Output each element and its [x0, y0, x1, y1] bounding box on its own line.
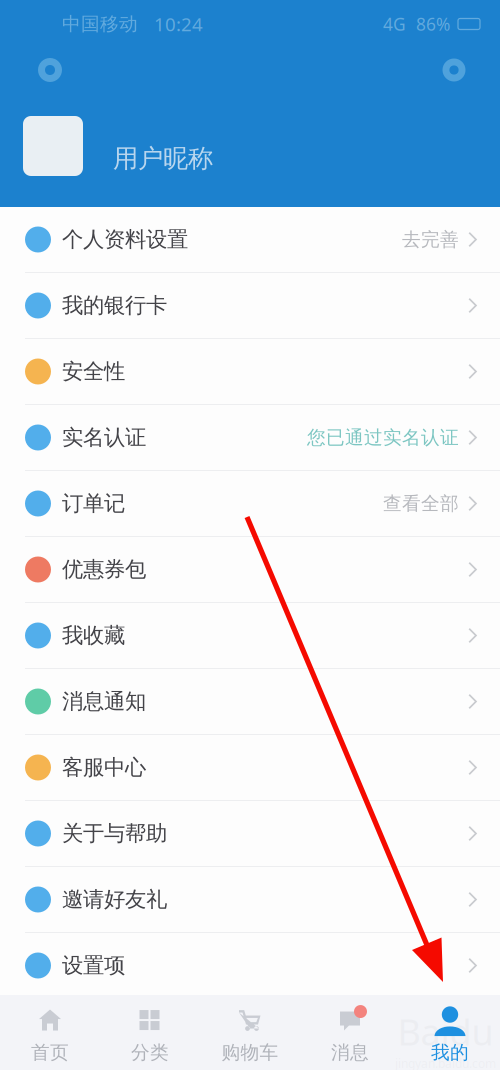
staticText: 您已通过实名认证	[307, 426, 459, 449]
staticText: 个人资料设置	[62, 226, 188, 253]
button[interactable]: 邀请好友礼	[0, 867, 500, 932]
staticText: 10:24	[154, 12, 203, 36]
button[interactable]: 个人资料设置	[0, 207, 500, 272]
staticText: 我收藏	[62, 622, 125, 649]
button[interactable]: 头像	[23, 116, 83, 176]
staticText: 关于与帮助	[62, 820, 167, 847]
button[interactable]: 安全性	[0, 339, 500, 404]
button[interactable]: 设置项	[0, 933, 500, 998]
button[interactable]: 分类	[100, 995, 200, 1070]
staticText: 首页	[31, 1041, 69, 1064]
staticText: 客服中心	[62, 754, 146, 781]
staticText: 去完善	[402, 228, 459, 251]
button[interactable]: 优惠券包	[0, 537, 500, 602]
staticText: 邀请好友礼	[62, 886, 167, 913]
staticText: 优惠券包	[62, 556, 146, 583]
staticText: 消息	[331, 1041, 369, 1064]
button[interactable]: 实名认证	[0, 405, 500, 470]
button[interactable]: 订单记	[0, 471, 500, 536]
button[interactable]: 购物车	[200, 995, 300, 1070]
button[interactable]: 首页	[0, 995, 100, 1070]
button[interactable]: 我收藏	[0, 603, 500, 668]
staticText: 用户昵称	[113, 143, 213, 174]
staticText: jingyan.baidu.com	[395, 1055, 496, 1070]
button[interactable]: 关于与帮助	[0, 801, 500, 866]
button[interactable]: 扫一扫	[30, 50, 70, 90]
button[interactable]: 我的	[400, 995, 500, 1070]
button[interactable]: 消息	[300, 995, 400, 1070]
staticText: 实名认证	[62, 424, 146, 451]
staticText: 86%	[416, 12, 450, 35]
staticText: 设置项	[62, 952, 125, 979]
staticText: 订单记	[62, 490, 125, 517]
staticText: 中国移动	[62, 12, 138, 35]
staticText: 我的	[431, 1041, 469, 1064]
staticText: Baidu	[397, 1008, 493, 1055]
staticText: 我的银行卡	[62, 292, 167, 319]
button[interactable]: 客服中心	[0, 735, 500, 800]
staticText: 查看全部	[383, 492, 459, 515]
staticText: 安全性	[62, 358, 125, 385]
button[interactable]: 设置	[434, 50, 474, 90]
button[interactable]: 我的银行卡	[0, 273, 500, 338]
staticText: 消息通知	[62, 688, 146, 715]
button[interactable]: 消息通知	[0, 669, 500, 734]
staticText: 分类	[131, 1041, 169, 1064]
staticText: 购物车	[221, 1041, 278, 1064]
staticText: 4G	[383, 12, 406, 35]
